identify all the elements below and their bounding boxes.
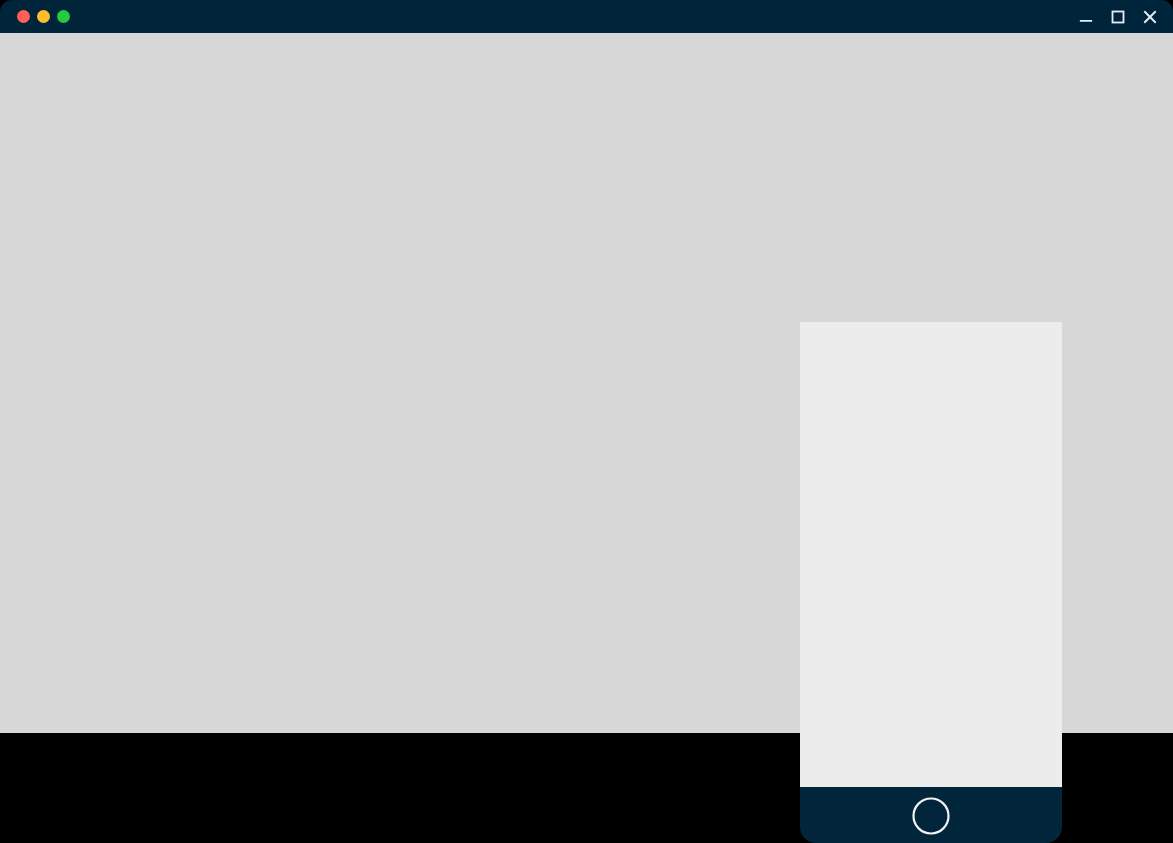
button[interactable]: Maximize [1107, 6, 1129, 28]
button[interactable]: Close [1139, 6, 1161, 28]
button[interactable]: Record [912, 797, 950, 835]
button[interactable]: Zoom window [57, 10, 70, 23]
button[interactable]: Close window [17, 10, 30, 23]
button[interactable]: Minimize window [37, 10, 50, 23]
button[interactable]: Minimize [1075, 6, 1097, 28]
